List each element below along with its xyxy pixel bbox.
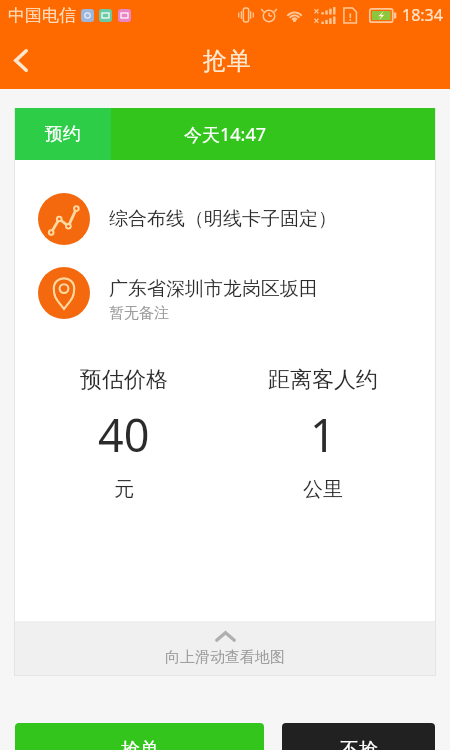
staticText: 预约	[45, 123, 81, 146]
staticText: 广东省深圳市龙岗区坂田	[109, 277, 318, 301]
staticText: 暂无备注	[109, 304, 169, 323]
button[interactable]: 不抢	[282, 723, 435, 750]
staticText: 18:34	[402, 4, 443, 26]
staticText: 综合布线（明线卡子固定）	[109, 207, 337, 231]
staticText: 今天14:47	[184, 122, 267, 147]
button[interactable]: 抢单	[15, 723, 264, 750]
button[interactable]: Back	[0, 38, 43, 82]
staticText: 距离客人约	[268, 366, 378, 394]
button[interactable]: 向上滑动查看地图	[15, 621, 435, 675]
staticText: 1	[310, 404, 336, 465]
staticText: 中国电信	[8, 5, 76, 26]
staticText: 向上滑动查看地图	[165, 648, 285, 667]
staticText: 40	[98, 404, 150, 465]
button[interactable]: 预约	[15, 108, 111, 160]
staticText: 公里	[303, 477, 343, 502]
staticText: 元	[114, 477, 134, 502]
staticText: 抢单	[121, 738, 159, 750]
staticText: 不抢	[340, 738, 378, 750]
button[interactable]: 今天14:47	[111, 108, 435, 160]
staticText: 抢单	[203, 46, 251, 76]
staticText: 预估价格	[80, 366, 168, 394]
